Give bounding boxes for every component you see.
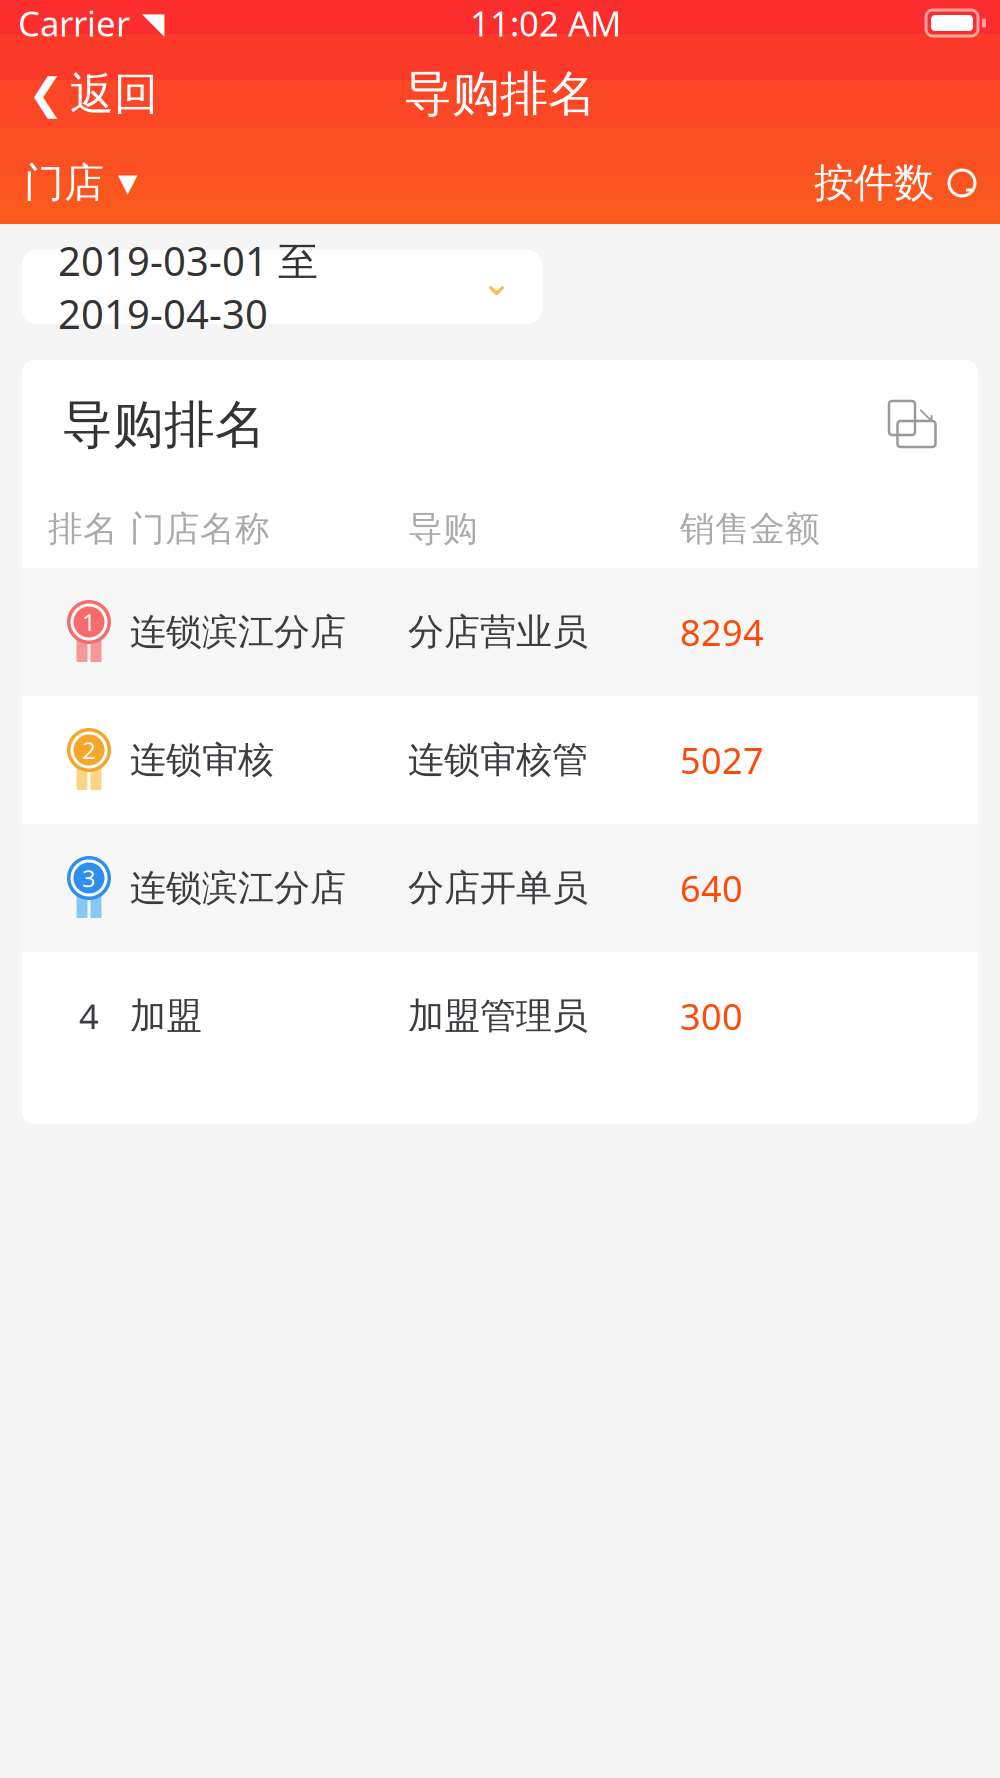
- staticText: 2019-03-01 至 2019-04-30: [58, 234, 318, 340]
- staticText: 销售金额: [680, 508, 820, 550]
- staticText: 8294: [680, 608, 764, 656]
- staticText: 4: [79, 993, 99, 1039]
- staticText: ▼: [118, 169, 137, 197]
- staticText: 2: [82, 734, 96, 766]
- staticText: 加盟管理员: [408, 994, 588, 1038]
- staticText: ◥: [142, 6, 165, 40]
- staticText: 分店开单员: [408, 866, 588, 910]
- staticText: 按件数: [814, 158, 934, 207]
- button[interactable]: 切换横屏: [880, 393, 944, 457]
- staticText: 1: [82, 606, 96, 638]
- staticText: 连锁审核管: [408, 738, 588, 782]
- staticText: 导购排名: [62, 394, 266, 456]
- staticText: 3: [82, 862, 96, 894]
- staticText: 连锁审核: [130, 738, 274, 782]
- button[interactable]: ❮: [14, 57, 172, 131]
- staticText: 连锁滨江分店: [130, 866, 346, 910]
- staticText: 导购排名: [404, 64, 596, 123]
- staticText: ❮: [28, 70, 64, 118]
- staticText: 返回: [70, 67, 158, 121]
- staticText: 排名: [48, 508, 118, 550]
- staticText: 5027: [680, 736, 764, 784]
- staticText: 640: [680, 864, 743, 912]
- staticText: 门店名称: [130, 508, 270, 550]
- button[interactable]: 门店: [6, 146, 155, 219]
- staticText: ↘: [916, 402, 935, 428]
- staticText: 门店: [24, 158, 104, 207]
- staticText: 加盟: [130, 994, 202, 1038]
- staticText: Carrier: [18, 0, 130, 46]
- button[interactable]: 按件数: [796, 146, 994, 219]
- staticText: 300: [680, 992, 743, 1040]
- staticText: 连锁滨江分店: [130, 610, 346, 654]
- staticText: 11:02 AM: [470, 0, 621, 46]
- staticText: 导购: [408, 508, 478, 550]
- staticText: ⌄: [481, 261, 512, 303]
- staticText: 分店营业员: [408, 610, 588, 654]
- button[interactable]: 2019-03-01 至 2019-04-30: [22, 250, 542, 324]
